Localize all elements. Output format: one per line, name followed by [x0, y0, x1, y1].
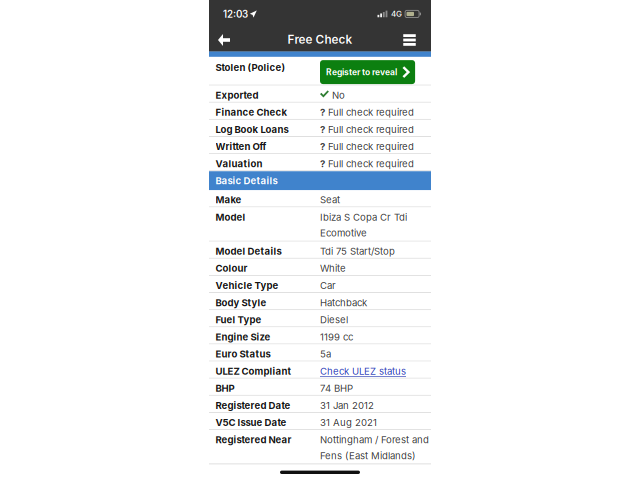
button[interactable]: Registered Near	[209, 430, 431, 464]
staticText: Vehicle Type	[215, 280, 278, 291]
staticText: Register to reveal	[326, 67, 397, 77]
button[interactable]: Menu	[394, 25, 424, 51]
staticText: ULEZ Compliant	[215, 365, 291, 377]
button[interactable]: V5C Issue Date	[209, 413, 431, 430]
button[interactable]: Engine Size	[209, 327, 431, 344]
button[interactable]: Vehicle Type	[209, 276, 431, 293]
button[interactable]: Exported	[209, 86, 431, 103]
staticText: Ecomotive	[320, 227, 367, 239]
button[interactable]: Register to reveal	[320, 60, 415, 84]
staticText: Fuel Type	[215, 314, 261, 326]
staticText: Make	[215, 194, 241, 206]
staticText: ?	[320, 124, 325, 135]
staticText: Full check required	[328, 141, 414, 152]
button[interactable]: Finance Check	[209, 103, 431, 120]
staticText: Model	[215, 211, 245, 223]
button[interactable]: Model Details	[209, 242, 431, 259]
staticText: Diesel	[320, 314, 348, 326]
staticText: Exported	[215, 89, 258, 101]
button[interactable]: ULEZ Compliant	[209, 361, 431, 379]
staticText: Body Style	[215, 297, 266, 308]
button[interactable]: Body Style	[209, 293, 431, 310]
staticText: Stolen (Police)	[215, 62, 285, 73]
staticText: Free Check	[287, 32, 352, 47]
staticText: Euro Status	[215, 348, 270, 360]
staticText: Colour	[215, 263, 247, 274]
button[interactable]: Log Book Loans	[209, 120, 431, 137]
staticText: Finance Check	[215, 106, 287, 118]
staticText: Check ULEZ status	[320, 365, 406, 377]
button[interactable]: Make	[209, 190, 431, 207]
staticText: Log Book Loans	[215, 124, 288, 135]
staticText: Registered Date	[215, 400, 290, 411]
staticText: 4G	[391, 9, 402, 19]
button[interactable]: Fuel Type	[209, 310, 431, 327]
staticText: 1199 cc	[320, 331, 353, 343]
staticText: Full check required	[328, 124, 414, 135]
staticText: Seat	[320, 194, 340, 206]
button[interactable]: Colour	[209, 259, 431, 276]
button[interactable]: Registered Date	[209, 396, 431, 413]
button[interactable]: Euro Status	[209, 344, 431, 361]
staticText: Written Off	[215, 141, 266, 152]
button[interactable]: BHP	[209, 379, 431, 396]
staticText: Nottingham / Forest and	[320, 434, 429, 446]
button[interactable]: Model	[209, 207, 431, 242]
staticText: V5C Issue Date	[215, 417, 286, 428]
staticText: Model Details	[215, 245, 281, 257]
staticText: 5a	[320, 348, 331, 360]
button[interactable]: Written Off	[209, 137, 431, 154]
staticText: 74 BHP	[320, 382, 353, 394]
staticText: No	[332, 89, 345, 101]
staticText: ?	[320, 106, 325, 118]
staticText: Engine Size	[215, 331, 270, 343]
button[interactable]: Back	[210, 25, 237, 51]
staticText: Car	[320, 280, 336, 291]
staticText: Registered Near	[215, 434, 291, 446]
staticText: Fens (East Midlands)	[320, 450, 416, 461]
staticText: ?	[320, 141, 325, 152]
staticText: Full check required	[328, 158, 414, 169]
staticText: 31 Aug 2021	[320, 417, 377, 428]
staticText: Tdi 75 Start/Stop	[320, 245, 395, 257]
button[interactable]: Valuation	[209, 154, 431, 171]
staticText: Hatchback	[320, 297, 367, 308]
staticText: 31 Jan 2012	[320, 400, 374, 411]
staticText: BHP	[215, 382, 234, 394]
staticText: Valuation	[215, 158, 262, 169]
staticText: Ibiza S Copa Cr Tdi	[320, 211, 407, 223]
staticText: ?	[320, 158, 325, 169]
staticText: White	[320, 263, 346, 274]
staticText: 12:03	[223, 8, 248, 20]
staticText: Basic Details	[215, 175, 277, 186]
staticText: Full check required	[328, 106, 414, 118]
